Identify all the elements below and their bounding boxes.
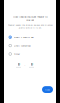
button[interactable]: Until I turn it off bbox=[6, 33, 53, 41]
staticText: Theater keeps the display awake and sile… bbox=[7, 23, 52, 29]
staticText: Next bbox=[45, 88, 50, 91]
staticText: 00 bbox=[30, 63, 32, 66]
staticText: : bbox=[24, 63, 25, 67]
button[interactable]: Timer bbox=[6, 50, 53, 58]
staticText: Until tomorrow bbox=[14, 44, 31, 47]
staticText: Timer bbox=[14, 52, 20, 55]
staticText: How long do you want Theater to stay on? bbox=[13, 15, 47, 21]
button[interactable]: Until tomorrow bbox=[6, 41, 53, 50]
button[interactable]: Next bbox=[42, 86, 53, 93]
staticText: Until I turn it off bbox=[14, 36, 33, 39]
staticText: 00 bbox=[17, 63, 19, 66]
